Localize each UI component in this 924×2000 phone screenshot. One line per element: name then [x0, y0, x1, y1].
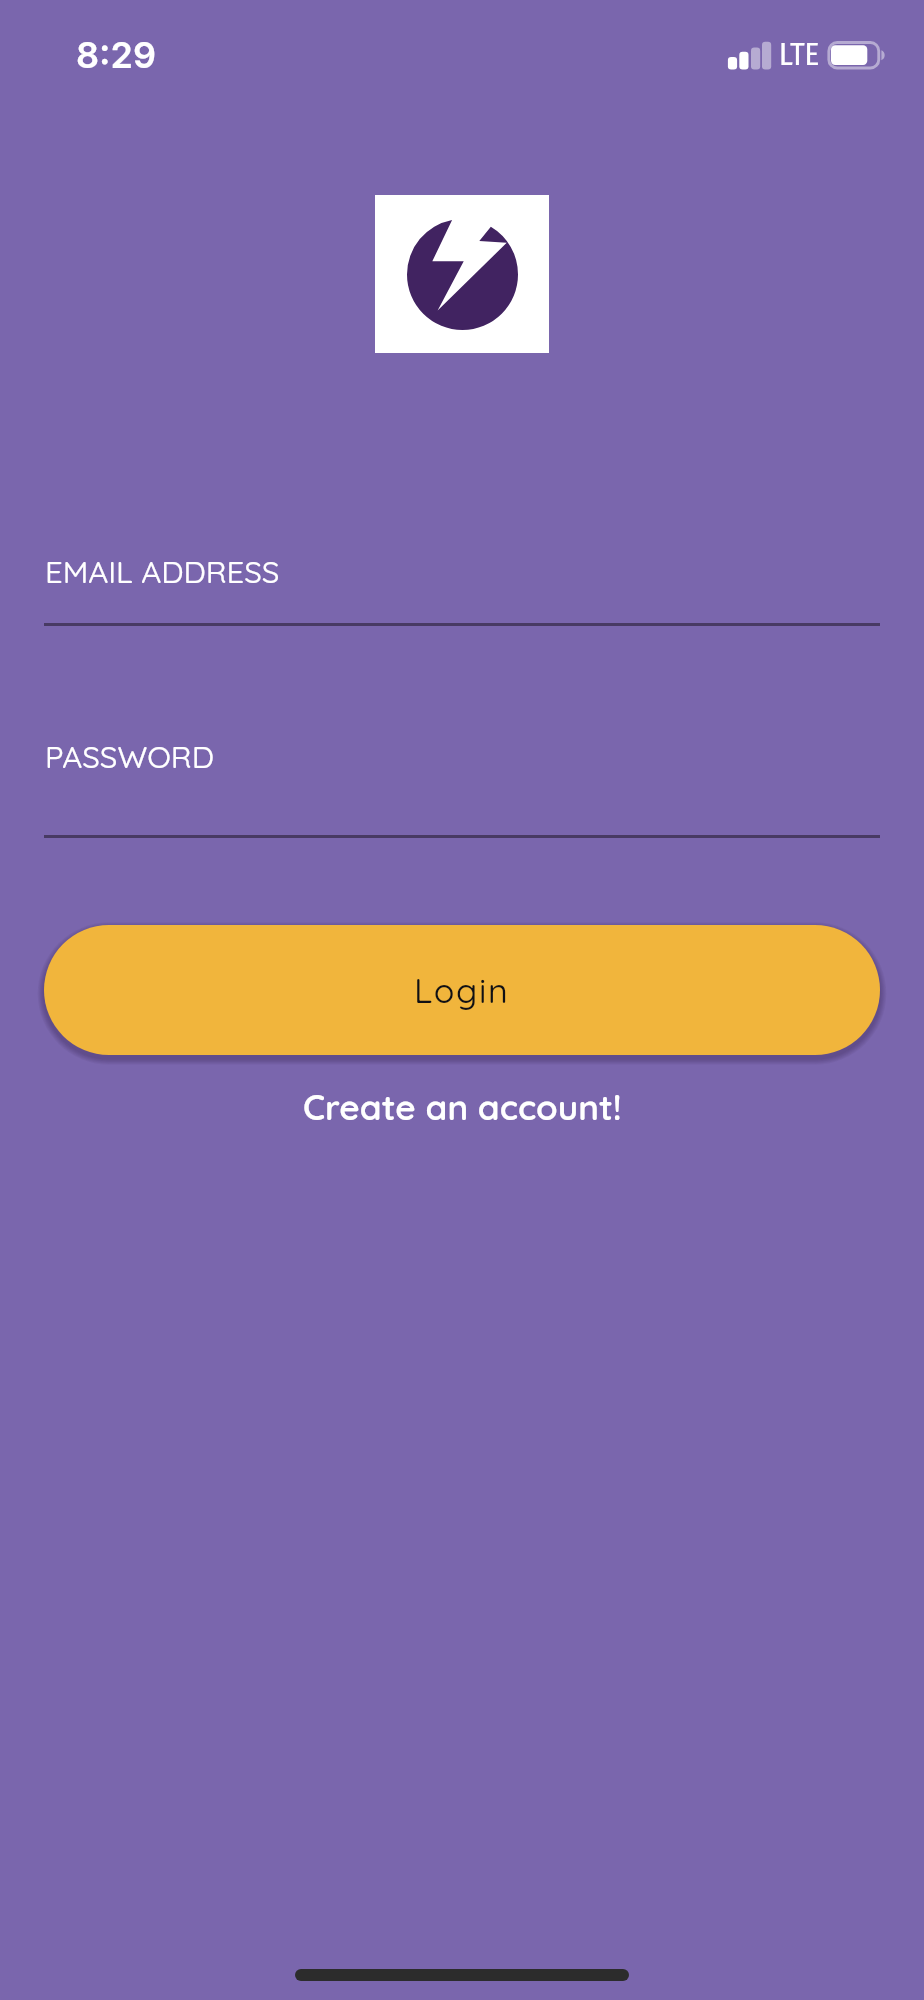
- staticText: PASSWORD: [45, 737, 214, 776]
- staticText: EMAIL ADDRESS: [45, 552, 280, 591]
- staticText: 8:29: [76, 33, 156, 77]
- button[interactable]: Create an account!: [0, 1076, 924, 1138]
- staticText: Login: [414, 969, 510, 1012]
- button[interactable]: Login: [44, 925, 880, 1055]
- staticText: LTE: [779, 36, 820, 73]
- staticText: Create an account!: [303, 1085, 622, 1129]
